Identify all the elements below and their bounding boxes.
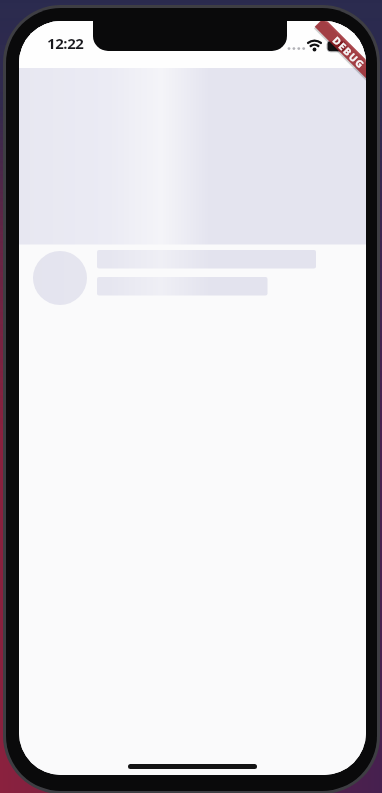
button[interactable] (19, 244, 366, 312)
staticText: DEBUG (330, 33, 366, 71)
button[interactable]: DEBUG (315, 21, 366, 81)
staticText: 12:22 (47, 33, 84, 53)
